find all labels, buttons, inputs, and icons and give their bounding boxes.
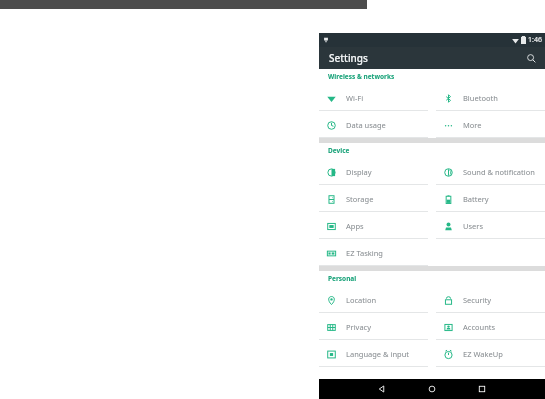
staticText: Device — [328, 146, 350, 155]
button[interactable]: Bluetooth — [436, 84, 545, 111]
button[interactable]: Recent apps — [469, 379, 495, 399]
staticText: Wireless & networks — [328, 72, 395, 81]
button[interactable]: Battery — [436, 185, 545, 212]
button[interactable]: Back — [369, 379, 395, 399]
button[interactable]: Apps — [319, 212, 428, 239]
staticText: Data usage — [346, 120, 386, 130]
button[interactable]: Storage — [319, 185, 428, 212]
button[interactable]: Data usage — [319, 111, 428, 138]
staticText: Personal — [328, 274, 357, 283]
button[interactable]: More — [436, 111, 545, 138]
staticText: Accounts — [463, 322, 496, 332]
button[interactable]: Accounts — [436, 313, 545, 340]
staticText: Display — [346, 167, 372, 177]
staticText: Privacy — [346, 322, 372, 332]
staticText: Storage — [346, 194, 374, 204]
button[interactable]: Location — [319, 286, 428, 313]
button[interactable]: Display — [319, 158, 428, 185]
button[interactable]: EZ Tasking — [319, 239, 428, 266]
button[interactable]: Language & input — [319, 340, 428, 367]
staticText: 1:46 — [528, 35, 542, 45]
button[interactable]: Users — [436, 212, 545, 239]
staticText: Settings — [329, 51, 368, 65]
button[interactable]: Search — [523, 50, 539, 66]
staticText: Wi-Fi — [346, 93, 364, 103]
staticText: More — [463, 120, 482, 130]
staticText: EZ Tasking — [346, 248, 383, 258]
staticText: EZ WakeUp — [463, 349, 503, 359]
button[interactable]: Home — [419, 379, 445, 399]
staticText: Language & input — [346, 349, 409, 359]
staticText: Apps — [346, 221, 364, 231]
staticText: Security — [463, 295, 492, 305]
button[interactable]: Privacy — [319, 313, 428, 340]
staticText: Battery — [463, 194, 489, 204]
button[interactable]: Wi-Fi — [319, 84, 428, 111]
staticText: Sound & notification — [463, 167, 535, 177]
button[interactable]: Sound & notification — [436, 158, 545, 185]
button[interactable]: EZ WakeUp — [436, 340, 545, 367]
staticText: Users — [463, 221, 483, 231]
staticText: Location — [346, 295, 377, 305]
staticText: Bluetooth — [463, 93, 498, 103]
button[interactable]: Security — [436, 286, 545, 313]
